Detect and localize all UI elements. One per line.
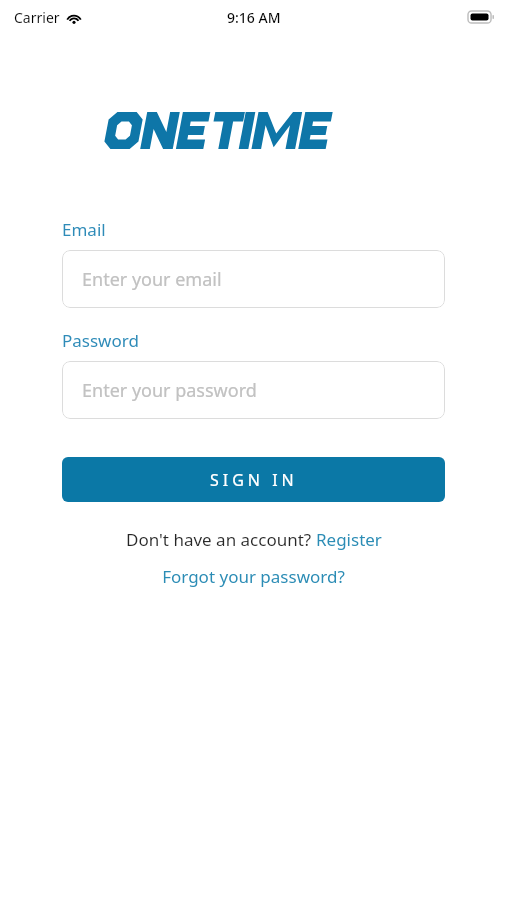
button[interactable]: Register — [316, 528, 382, 551]
staticText: 9:16 AM — [227, 8, 281, 27]
staticText: Enter your password — [82, 378, 257, 403]
other: ONETIME logo — [103, 112, 405, 149]
button[interactable]: Enter your password — [62, 361, 445, 419]
staticText: Carrier — [14, 8, 60, 27]
staticText: Email — [62, 218, 106, 241]
staticText: Register — [316, 528, 382, 551]
staticText: Forgot your password? — [162, 565, 345, 588]
staticText: Enter your email — [82, 267, 222, 292]
staticText: Password — [62, 329, 139, 352]
staticText: Don't have an account? — [126, 528, 316, 551]
staticText: SIGN IN — [210, 469, 298, 491]
button[interactable]: Forgot your password? — [162, 565, 345, 588]
button[interactable]: Enter your email — [62, 250, 445, 308]
button[interactable]: SIGN IN — [62, 457, 445, 502]
